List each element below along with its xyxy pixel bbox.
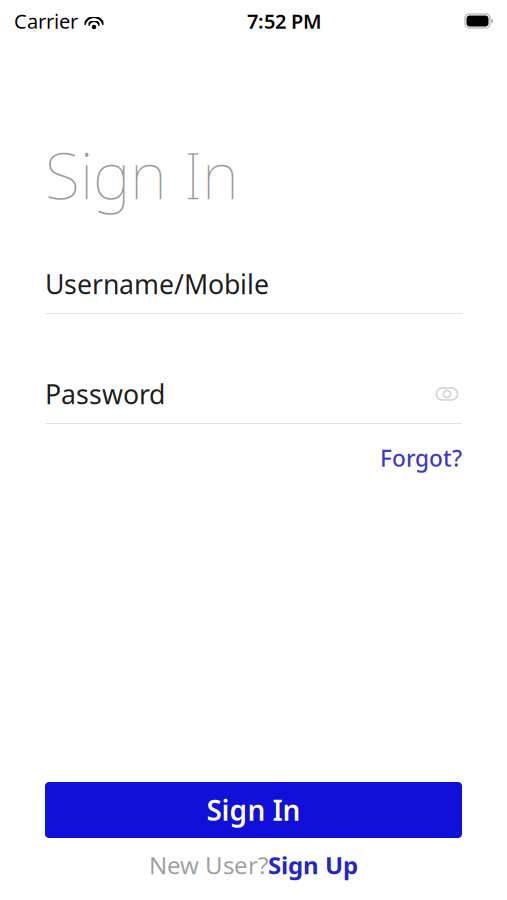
- staticText: Sign Up: [268, 849, 358, 881]
- button[interactable]: Show password: [432, 381, 462, 407]
- button[interactable]: New User?: [45, 850, 462, 880]
- button[interactable]: Forgot?: [380, 443, 462, 473]
- staticText: Sign In: [45, 132, 239, 217]
- staticText: Carrier: [14, 8, 78, 34]
- staticText: 7:52 PM: [247, 8, 322, 34]
- staticText: New User?: [149, 849, 268, 881]
- staticText: Password: [45, 376, 165, 412]
- staticText: Sign In: [206, 791, 300, 829]
- staticText: Username/Mobile: [45, 266, 269, 302]
- button[interactable]: Sign In: [45, 782, 462, 838]
- staticText: Forgot?: [380, 443, 462, 473]
